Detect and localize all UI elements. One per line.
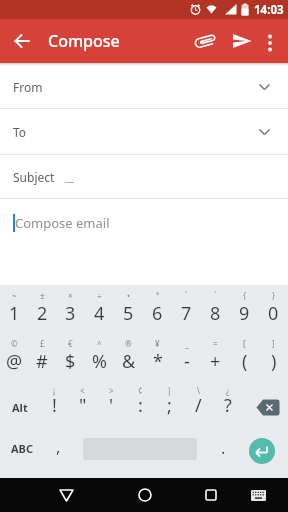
staticText: ¢	[138, 385, 143, 396]
button[interactable]: ÷	[85, 285, 114, 333]
staticText: Subject	[13, 169, 55, 185]
staticText: *	[153, 349, 163, 374]
button[interactable]	[247, 484, 269, 506]
button[interactable]: From	[0, 66, 288, 108]
button[interactable]	[262, 19, 278, 63]
button[interactable]: `	[201, 285, 230, 333]
button[interactable]	[242, 381, 288, 429]
staticText: Compose email	[15, 214, 110, 232]
staticText: #	[36, 349, 48, 374]
staticText: ¥	[155, 338, 160, 349]
staticText: €	[68, 338, 73, 349]
button[interactable]: •	[114, 285, 143, 333]
staticText: 3	[65, 301, 76, 326]
staticText: :	[138, 393, 143, 418]
button[interactable]: ¡	[40, 381, 68, 429]
button[interactable]: ,	[44, 429, 72, 478]
staticText: .	[221, 437, 226, 459]
button[interactable]: ®	[114, 333, 143, 381]
staticText: =	[213, 338, 218, 349]
button[interactable]: ¢	[126, 381, 155, 429]
staticText: ,	[56, 436, 61, 458]
button[interactable]: ¿	[213, 381, 242, 429]
staticText: 0	[268, 301, 279, 326]
button[interactable]: Alt	[0, 381, 40, 429]
staticText: 7	[181, 301, 192, 326]
button[interactable]: }	[259, 285, 288, 333]
button[interactable]: To	[0, 109, 288, 154]
button[interactable]: \	[184, 381, 213, 429]
staticText: _	[185, 338, 189, 349]
staticText: Alt	[12, 400, 28, 415]
staticText: ©	[11, 338, 18, 349]
button[interactable]: ±	[28, 285, 56, 333]
staticText: %	[92, 349, 107, 374]
button[interactable]: ~	[0, 285, 28, 333]
button[interactable]: =	[201, 333, 230, 381]
staticText: 2	[37, 301, 48, 326]
button[interactable]: >	[97, 381, 126, 429]
button[interactable]	[197, 481, 225, 509]
staticText: @	[6, 349, 23, 374]
staticText: [	[243, 338, 246, 349]
button[interactable]: €	[56, 333, 85, 381]
staticText: \	[197, 385, 200, 396]
button[interactable]: <	[68, 381, 97, 429]
staticText: ®	[125, 338, 132, 349]
button[interactable]: .	[197, 429, 249, 478]
button[interactable]	[0, 19, 44, 63]
button[interactable]	[52, 481, 80, 509]
staticText: +	[210, 349, 221, 374]
button[interactable]: {	[230, 285, 259, 333]
staticText: ÷	[97, 290, 102, 301]
staticText: /	[195, 393, 202, 418]
staticText: ´	[185, 290, 188, 301]
button[interactable]: Compose email	[13, 214, 288, 232]
button[interactable]: ]	[259, 333, 288, 381]
button[interactable]: _	[172, 333, 201, 381]
staticText: &	[122, 349, 136, 374]
button[interactable]	[131, 481, 159, 509]
button[interactable]: ^	[85, 333, 114, 381]
staticText: |	[167, 385, 172, 396]
staticText: 4	[94, 301, 105, 326]
staticText: •	[127, 290, 131, 301]
button[interactable]: [	[230, 333, 259, 381]
staticText: ~	[12, 290, 17, 301]
button[interactable]: |	[155, 381, 184, 429]
staticText: ¡	[53, 385, 56, 396]
staticText: !	[52, 393, 57, 418]
staticText: }	[272, 290, 276, 301]
staticText: 5	[123, 301, 134, 326]
staticText: (	[242, 349, 248, 374]
button[interactable]: ABC	[0, 429, 44, 478]
button[interactable]: ×	[56, 285, 85, 333]
button[interactable]: °	[143, 285, 172, 333]
button[interactable]	[249, 438, 275, 464]
staticText: ;	[167, 393, 172, 418]
staticText: 1	[9, 301, 20, 326]
staticText: `	[214, 290, 217, 301]
staticText: From	[13, 79, 43, 95]
staticText: To	[13, 124, 27, 140]
staticText: "	[79, 393, 87, 418]
staticText: {	[243, 290, 247, 301]
button[interactable]: ©	[0, 333, 28, 381]
staticText: '	[109, 393, 114, 418]
button[interactable]	[230, 19, 254, 63]
button[interactable]: ´	[172, 285, 201, 333]
staticText: 14:03	[254, 2, 284, 18]
button[interactable]: ¥	[143, 333, 172, 381]
button[interactable]: £	[28, 333, 56, 381]
button[interactable]: Subject	[0, 155, 288, 198]
staticText: ¿	[226, 385, 230, 396]
staticText: ]	[272, 338, 275, 349]
staticText: 6	[152, 301, 163, 326]
staticText: -	[184, 349, 190, 374]
staticText: £	[40, 338, 45, 349]
staticText: °	[156, 290, 160, 301]
button[interactable]	[193, 19, 217, 63]
staticText: <	[80, 385, 85, 396]
staticText: ^	[97, 338, 102, 349]
